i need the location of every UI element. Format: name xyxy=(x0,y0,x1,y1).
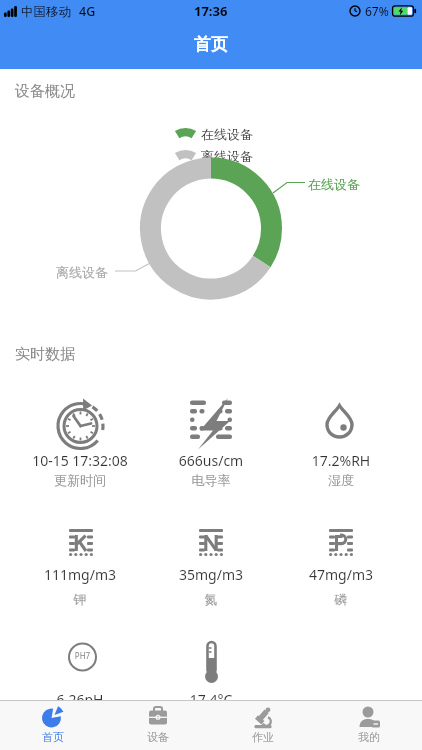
staticText: 我的 xyxy=(358,730,380,744)
staticText: 首页 xyxy=(194,34,228,55)
staticText: 湿度 xyxy=(271,472,411,488)
button[interactable]: 首页 xyxy=(0,22,422,67)
button[interactable]: 我的 xyxy=(316,700,422,750)
staticText: 设备 xyxy=(147,730,169,744)
staticText: 111mg/m3 xyxy=(10,565,150,584)
staticText: 中国移动 xyxy=(21,4,71,20)
staticText: 离线设备 xyxy=(201,148,253,164)
staticText: 6.26pH xyxy=(10,690,150,709)
button[interactable]: 首页 xyxy=(0,700,105,750)
staticText: 在线设备 xyxy=(201,126,253,142)
staticText: 氮 xyxy=(141,591,281,607)
staticText: 666us/cm xyxy=(141,451,281,470)
staticText: 4G xyxy=(79,3,96,20)
staticText: 17:36 xyxy=(194,2,228,20)
staticText: 47mg/m3 xyxy=(271,565,411,584)
staticText: 35mg/m3 xyxy=(141,565,281,584)
staticText: 10-15 17:32:08 xyxy=(10,451,150,470)
button[interactable]: 作业 xyxy=(210,700,316,750)
staticText: 67% xyxy=(365,3,389,19)
staticText: 电导率 xyxy=(141,472,281,488)
staticText: 设备概况 xyxy=(15,82,75,101)
staticText: 磷 xyxy=(271,591,411,607)
staticText: 更新时间 xyxy=(10,472,150,488)
staticText: 17.4°C xyxy=(141,690,281,709)
staticText: 在线设备 xyxy=(308,176,360,192)
staticText: 实时数据 xyxy=(15,345,75,364)
staticText: 17.2%RH xyxy=(271,451,411,470)
button[interactable]: 设备 xyxy=(105,700,210,750)
staticText: 钾 xyxy=(10,591,150,607)
staticText: PH7 xyxy=(68,650,97,661)
staticText: 首页 xyxy=(42,730,64,744)
staticText: 作业 xyxy=(252,730,274,744)
staticText: 离线设备 xyxy=(56,264,108,280)
